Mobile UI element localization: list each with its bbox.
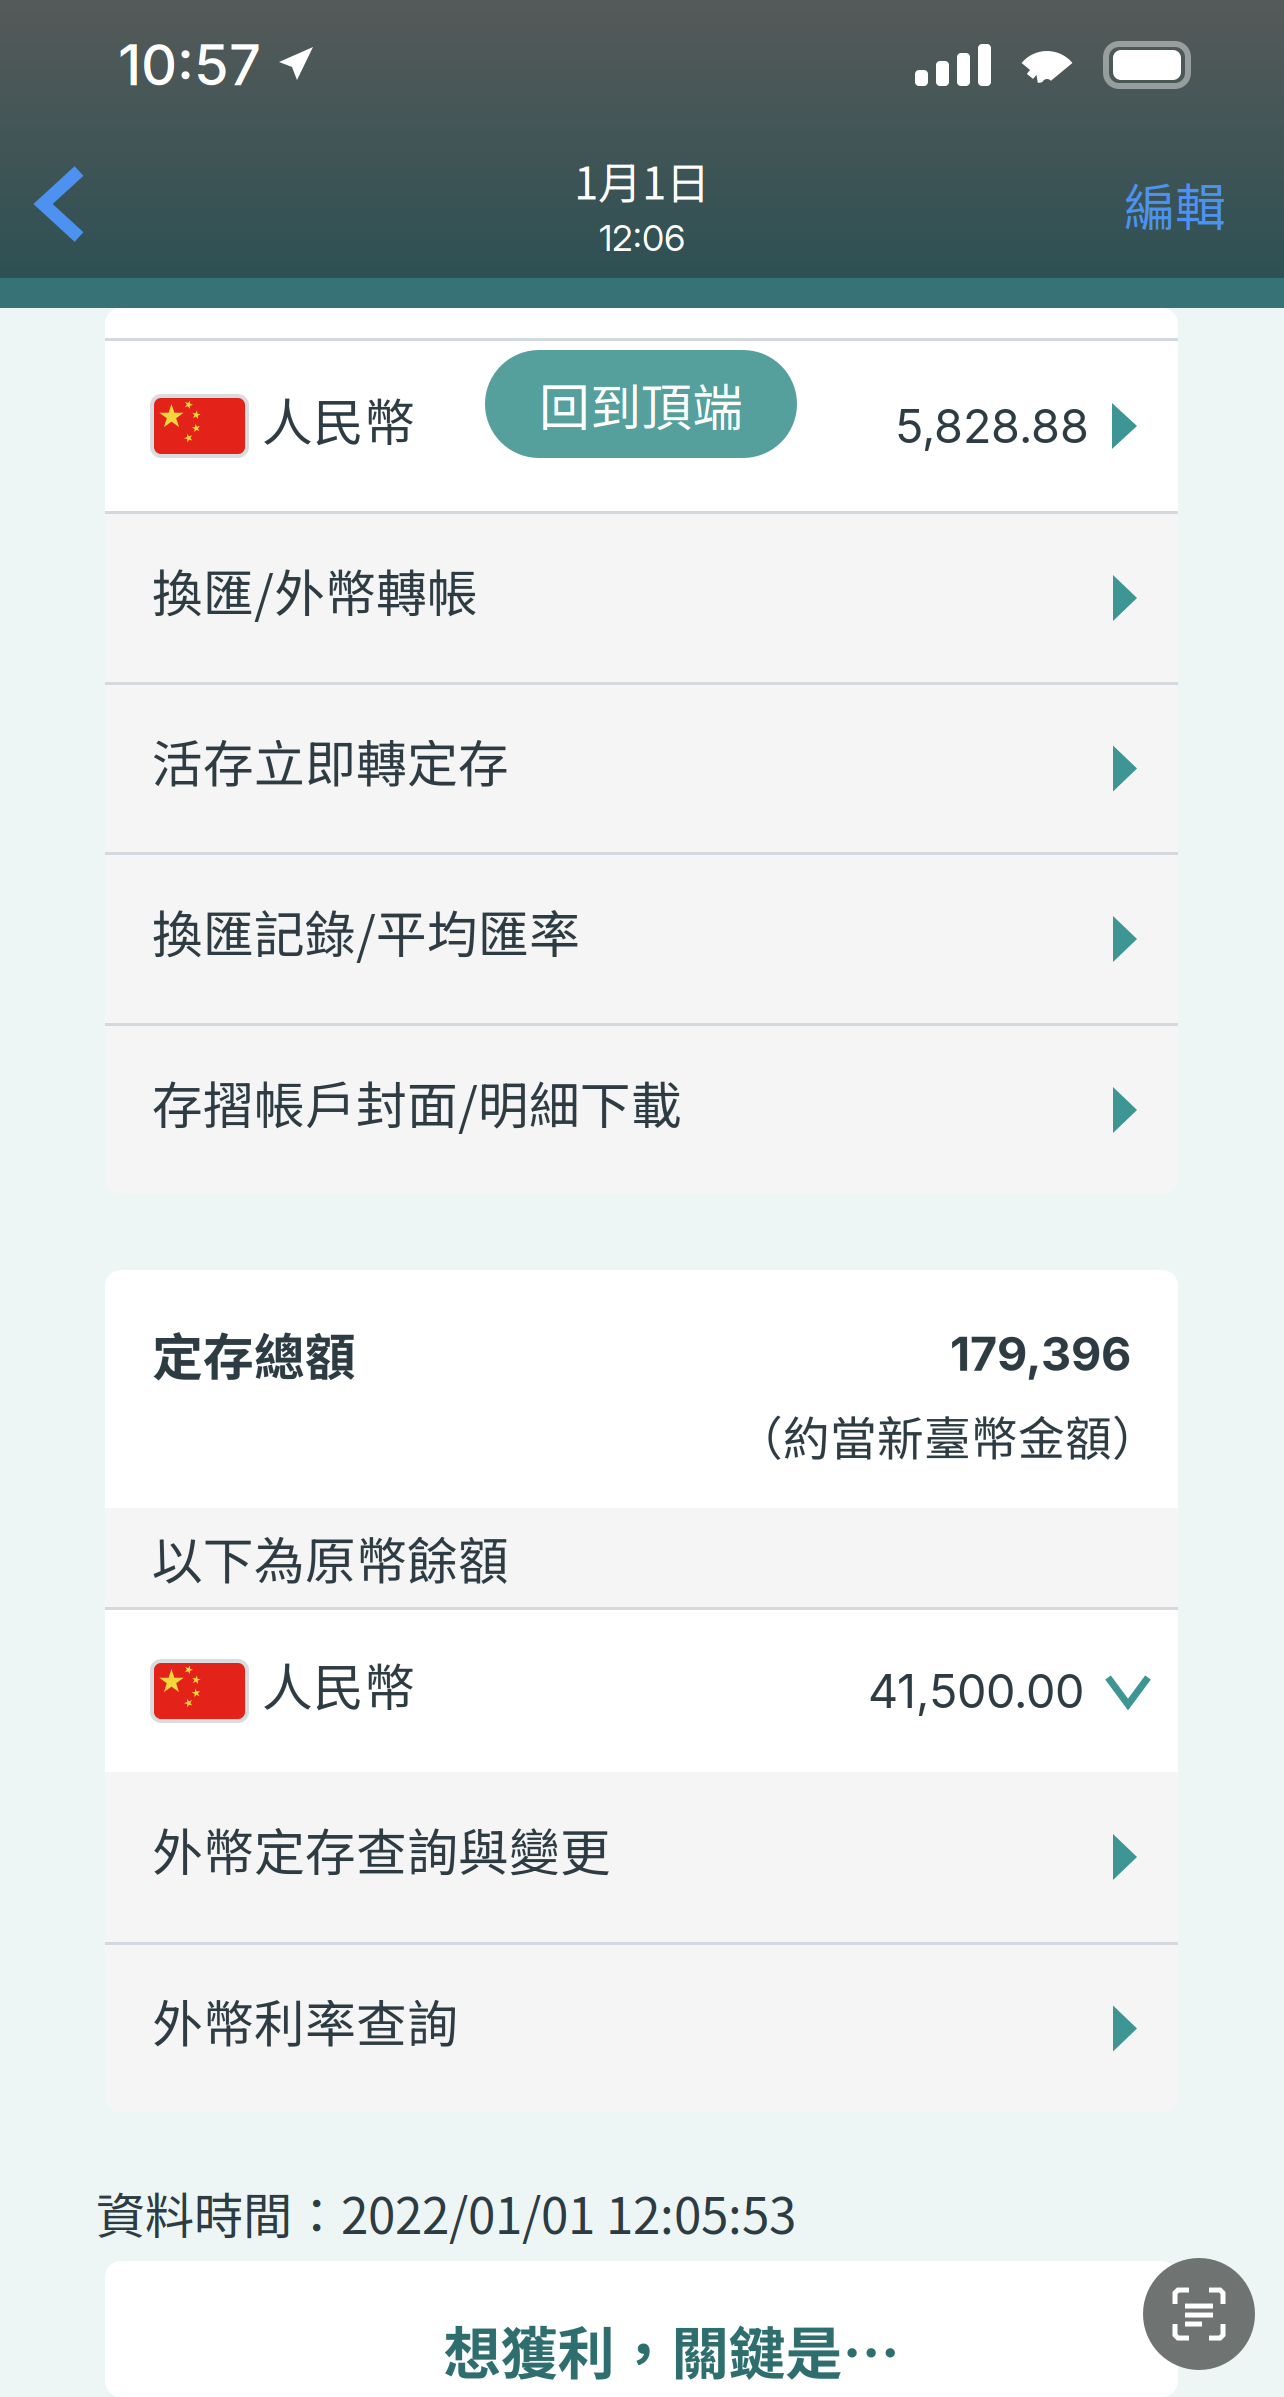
button[interactable]: 換匯/外幣轉帳 (105, 514, 1178, 682)
staticText: 5,828.88 (895, 398, 1089, 454)
staticText: 回到頂端 (539, 367, 743, 441)
button[interactable]: 換匯記錄/平均匯率 (105, 855, 1178, 1023)
button[interactable]: 返回 (0, 130, 152, 278)
staticText: 人民幣 (262, 382, 415, 456)
button[interactable]: 外幣利率查詢 (105, 1945, 1178, 2112)
staticText: 活存立即轉定存 (152, 724, 509, 797)
staticText: 換匯記錄/平均匯率 (152, 894, 580, 968)
staticText: 定存總額 (152, 1317, 356, 1390)
staticText: 資料時間：2022/01/01 12:05:53 (96, 2177, 796, 2248)
button[interactable]: 活存立即轉定存 (105, 685, 1178, 852)
staticText: 存摺帳戶封面/明細下載 (152, 1065, 682, 1139)
button[interactable]: 存摺帳戶封面/明細下載 (105, 1026, 1178, 1194)
button[interactable]: 掃描 (1143, 2258, 1255, 2370)
staticText: 以下為原幣餘額 (152, 1521, 509, 1594)
staticText: （約當新臺幣金額） (736, 1401, 1159, 1469)
button[interactable]: 人民幣 (105, 1610, 1178, 1772)
button[interactable]: 回到頂端 (485, 350, 797, 458)
staticText: 編輯 (1124, 167, 1226, 241)
button[interactable]: 編輯 (1064, 130, 1284, 278)
staticText: 換匯/外幣轉帳 (152, 553, 478, 627)
staticText: 41,500.00 (868, 1663, 1084, 1719)
button[interactable]: 外幣定存查詢與變更 (105, 1772, 1178, 1942)
staticText: 10:57 (118, 31, 261, 99)
staticText: 外幣定存查詢與變更 (152, 1812, 611, 1886)
staticText: 人民幣 (262, 1647, 415, 1721)
button[interactable]: 人民幣 (105, 341, 1178, 511)
staticText: 12:06 (599, 216, 685, 260)
staticText: 179,396 (950, 1325, 1131, 1382)
staticText: 想獲利，關鍵是… (443, 2308, 899, 2391)
staticText: 1月1日 (574, 148, 710, 212)
staticText: 外幣利率查詢 (152, 1984, 458, 2057)
